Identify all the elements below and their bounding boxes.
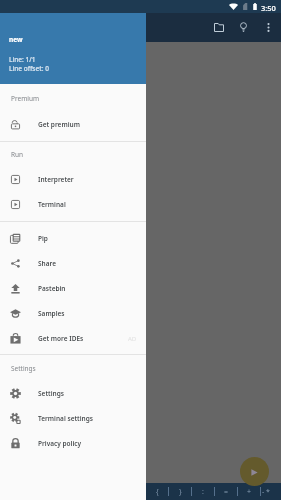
button[interactable]: Share	[0, 251, 146, 276]
button[interactable]: Run	[240, 457, 269, 486]
button[interactable]: {	[146, 483, 168, 500]
staticText: {	[156, 487, 159, 497]
staticText: Get more IDEs	[38, 334, 84, 343]
staticText: Premium	[11, 94, 40, 103]
button[interactable]: Terminal	[0, 192, 146, 217]
staticText: Pip	[38, 234, 48, 243]
button[interactable]: Pip	[0, 226, 146, 251]
button[interactable]: More options	[255, 14, 281, 40]
staticText: 3:50	[261, 3, 276, 13]
staticText: Privacy policy	[38, 439, 82, 448]
staticText: Line offset: 0	[9, 64, 49, 73]
button[interactable]: Open file	[206, 14, 232, 40]
button[interactable]: Pastebin	[0, 276, 146, 301]
button[interactable]: Hint	[230, 14, 256, 40]
staticText: Terminal	[38, 200, 66, 209]
button[interactable]: -	[261, 483, 266, 500]
staticText: AD	[128, 335, 137, 343]
button[interactable]: =	[215, 483, 237, 500]
button[interactable]: Get more IDEs	[0, 326, 146, 351]
staticText: Pastebin	[38, 284, 66, 293]
staticText: }	[179, 487, 182, 497]
button[interactable]: Samples	[0, 301, 146, 326]
staticText: Share	[38, 259, 57, 268]
button[interactable]: Terminal settings	[0, 406, 146, 431]
button[interactable]: new	[0, 13, 146, 84]
staticText: Interpreter	[38, 175, 74, 184]
button[interactable]: }	[169, 483, 191, 500]
button[interactable]: Get premium	[0, 112, 146, 137]
staticText: Samples	[38, 309, 65, 318]
staticText: :	[202, 487, 204, 497]
button[interactable]: +	[238, 483, 260, 500]
staticText: =	[224, 487, 229, 497]
staticText: new	[9, 35, 23, 44]
staticText: Run	[11, 150, 24, 159]
button[interactable]: Privacy policy	[0, 431, 146, 456]
button[interactable]: Interpreter	[0, 167, 146, 192]
staticText: -	[262, 487, 265, 497]
staticText: Line: 1/1	[9, 55, 36, 64]
staticText: Settings	[38, 389, 64, 398]
staticText: Get premium	[38, 120, 80, 129]
staticText: Terminal settings	[38, 414, 93, 423]
button[interactable]: :	[192, 483, 214, 500]
staticText: +	[247, 487, 252, 497]
button[interactable]: Settings	[0, 381, 146, 406]
staticText: Settings	[11, 364, 36, 373]
